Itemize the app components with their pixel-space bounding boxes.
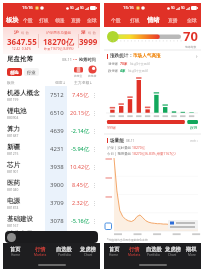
staticText: 881167 [7, 223, 19, 227]
button[interactable]: 精选 [7, 68, 22, 76]
staticText: 情绪 [147, 16, 160, 24]
button[interactable]: 情绪 [144, 13, 163, 27]
staticText: 4家 [120, 68, 126, 73]
button[interactable]: 自选股 [52, 243, 76, 260]
button[interactable]: 电源 [3, 194, 100, 212]
staticText: 算力 [7, 125, 20, 133]
staticText: 999家 [107, 125, 117, 130]
button[interactable]: 芯片 [3, 158, 100, 176]
staticText: *均值增为当日两市量能变化走势 [107, 238, 148, 242]
staticText: -5.94亿 [71, 145, 90, 153]
button[interactable]: 基础建设 [3, 212, 100, 230]
button[interactable]: 沪 [5, 27, 38, 54]
staticText: 跌停家 [108, 69, 119, 73]
staticText: 5G [181, 6, 185, 10]
button[interactable]: 消费电子 [3, 230, 100, 231]
button[interactable]: 首页 [104, 243, 124, 260]
button[interactable]: 沪深两市总量能 [39, 27, 78, 54]
staticText: Portfolio [147, 253, 160, 257]
button[interactable]: 医药 [3, 176, 100, 194]
staticText: 沪深 | 实时量能 [107, 145, 132, 150]
button[interactable] [5, 231, 98, 243]
button[interactable]: 行业 [24, 68, 39, 76]
staticText: 15:16 [123, 5, 134, 11]
staticText: ⋮ [92, 200, 97, 206]
button[interactable]: 直播 [68, 13, 84, 27]
staticText: 3999 [79, 36, 98, 47]
button[interactable]: 全球 [84, 13, 100, 27]
staticText: 抢筹时间 [79, 57, 96, 62]
staticText: 涨跌统计： [110, 53, 133, 59]
button[interactable]: 龙虎榜 [163, 243, 182, 260]
staticText: 指 数 [88, 31, 97, 35]
staticText: 4639 [50, 127, 64, 135]
button[interactable]: 个股 [20, 13, 36, 27]
button[interactable]: 龙虎榜 [76, 243, 100, 260]
staticText: (过去5个交易日) [128, 69, 149, 73]
staticText: Markets [34, 253, 47, 257]
staticText: ⋮ [92, 164, 97, 170]
staticText: 881687 [7, 133, 19, 137]
button[interactable]: 直播 [163, 13, 182, 27]
staticText: 沪深两市总量能 [46, 31, 72, 36]
button[interactable]: 期权 [182, 243, 201, 260]
staticText: 881874 [7, 205, 19, 209]
button[interactable]: 抢筹宝 [74, 65, 83, 78]
staticText: 全球 [87, 17, 97, 23]
staticText: Chart [84, 253, 93, 257]
staticText: 跌99 [190, 125, 198, 130]
staticText: More [188, 253, 196, 257]
staticText: 70 [183, 27, 198, 45]
staticText: 5G [171, 6, 175, 10]
staticText: 深 [81, 30, 86, 36]
staticText: 3900 [50, 181, 64, 189]
staticText: ••• [73, 57, 78, 62]
staticText: -2.14亿 [71, 127, 90, 135]
staticText: 机器人概念 [7, 89, 40, 97]
button[interactable]: 个股 [106, 13, 125, 27]
staticText: 昨量11670亿(6.89%) [44, 47, 74, 51]
button[interactable]: 打板 [125, 13, 144, 27]
button[interactable]: 行情 [28, 243, 52, 260]
staticText: 08-11 [62, 57, 72, 62]
button[interactable]: 领涨 [52, 13, 68, 27]
button[interactable]: 锂电池 [3, 104, 100, 122]
button[interactable]: 打板 [36, 13, 52, 27]
button[interactable]: 新疆 [3, 140, 100, 158]
staticText: 历史 › [190, 139, 198, 143]
staticText: 个股 [111, 17, 121, 23]
button[interactable]: 机器人概念 [3, 86, 100, 104]
staticText: 直播 [71, 17, 81, 23]
button[interactable]: 首页 [3, 243, 28, 260]
button[interactable]: 深 [79, 27, 98, 54]
staticText: 08-11 [126, 139, 135, 143]
staticText: 沪 [14, 30, 19, 36]
staticText: 板块 [6, 16, 19, 24]
staticText: 今日 | 预测量能 [107, 151, 132, 156]
staticText: 芯片 [7, 161, 20, 169]
button[interactable]: 板块 [5, 13, 20, 27]
button[interactable]: 涨跌统计： [107, 51, 198, 61]
staticText: Portfolio [58, 253, 71, 257]
button[interactable]: 自选股 [144, 243, 163, 260]
staticText: 精选 [10, 70, 19, 75]
staticText: 881901 [7, 169, 19, 173]
staticText: 881040 [7, 187, 19, 191]
staticText: 5G [70, 6, 74, 10]
staticText: Home [11, 253, 21, 257]
button[interactable]: 全球 [182, 13, 201, 27]
staticText: 打板 [130, 17, 140, 23]
staticText: 6510 [50, 109, 64, 117]
button[interactable]: 抢筹榜 [88, 65, 97, 78]
staticText: 881199 [7, 97, 19, 101]
button[interactable]: 行情 [124, 243, 144, 260]
staticText: 新疆 [7, 143, 20, 151]
staticText: 场量能 [110, 138, 124, 144]
staticText: 880904 [7, 115, 19, 119]
button[interactable]: 算力 [3, 122, 100, 140]
staticText: ⋮ [92, 110, 97, 116]
staticText: 5G [80, 6, 84, 10]
staticText: 8.45亿 [72, 181, 89, 189]
staticText: Home [109, 253, 119, 257]
